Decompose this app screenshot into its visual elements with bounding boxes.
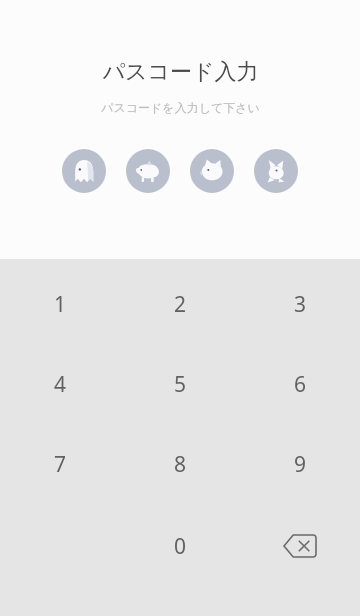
staticText: 2 xyxy=(174,290,187,319)
button[interactable]: 4 xyxy=(0,363,120,405)
staticText: 0 xyxy=(174,532,187,561)
staticText: 1 xyxy=(54,290,67,319)
button[interactable]: 3 xyxy=(240,283,360,325)
staticText: パスコードを入力して下さい xyxy=(101,100,260,115)
staticText: パスコード入力 xyxy=(102,58,259,86)
staticText: 6 xyxy=(294,370,307,399)
button[interactable]: Backspace xyxy=(240,525,360,567)
button[interactable]: 9 xyxy=(240,443,360,485)
button[interactable]: 0 xyxy=(120,525,240,567)
staticText: 7 xyxy=(54,450,67,479)
staticText: 5 xyxy=(174,370,187,399)
staticText: 9 xyxy=(294,450,307,479)
staticText: 4 xyxy=(54,370,67,399)
button[interactable]: 1 xyxy=(0,283,120,325)
button[interactable]: 5 xyxy=(120,363,240,405)
staticText: 8 xyxy=(174,450,187,479)
button[interactable]: 8 xyxy=(120,443,240,485)
button[interactable]: 7 xyxy=(0,443,120,485)
button[interactable]: 2 xyxy=(120,283,240,325)
staticText: 3 xyxy=(294,290,307,319)
button[interactable]: 6 xyxy=(240,363,360,405)
